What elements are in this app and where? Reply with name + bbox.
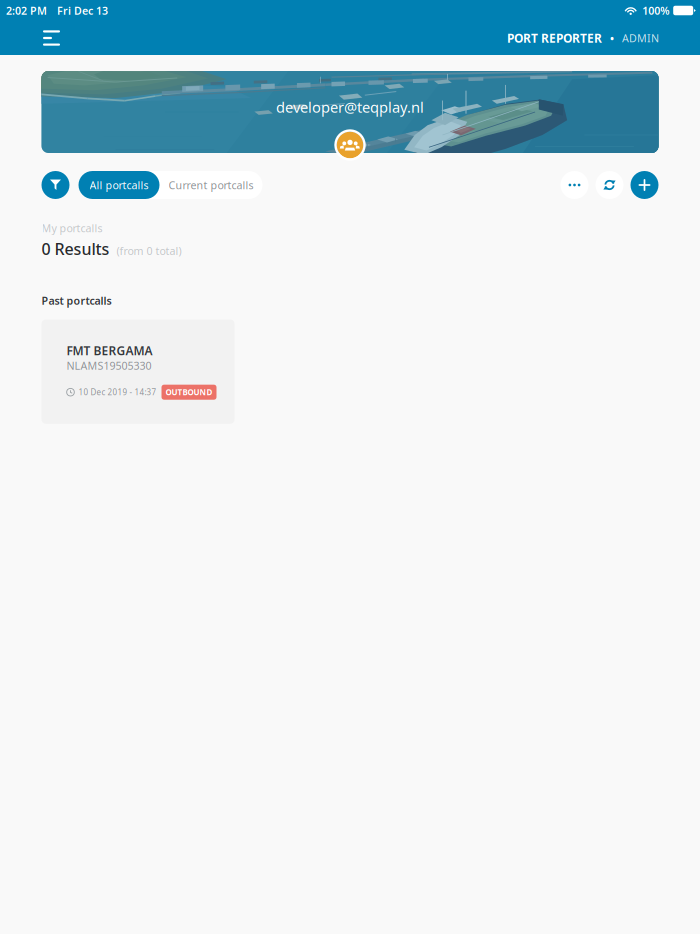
- button[interactable]: More options: [560, 171, 588, 199]
- staticText: •: [610, 31, 614, 45]
- button[interactable]: All portcalls: [78, 171, 159, 199]
- staticText: FMT BERGAMA: [66, 343, 152, 358]
- staticText: All portcalls: [89, 178, 148, 192]
- staticText: OUTBOUND: [165, 387, 212, 397]
- staticText: 10 Dec 2019 - 14:37: [78, 387, 156, 397]
- button[interactable]: FMT BERGAMA: [41, 320, 234, 424]
- button[interactable]: Current portcalls: [159, 171, 262, 199]
- staticText: PORT REPORTER: [507, 30, 602, 46]
- staticText: Current portcalls: [168, 178, 253, 192]
- staticText: 2:02 PM: [6, 3, 47, 18]
- staticText: Fri Dec 13: [57, 3, 108, 18]
- staticText: developer@teqplay.nl: [276, 97, 424, 117]
- staticText: 100%: [642, 3, 669, 18]
- staticText: My portcalls: [41, 221, 102, 235]
- staticText: Past portcalls: [41, 293, 111, 308]
- staticText: (from 0 total): [116, 244, 181, 258]
- button[interactable]: PORT REPORTER: [507, 24, 659, 52]
- button[interactable]: Filter: [41, 171, 69, 199]
- staticText: 0 Results: [41, 238, 109, 259]
- staticText: NLAMS19505330: [66, 358, 151, 373]
- button[interactable]: Refresh: [588, 171, 623, 199]
- button[interactable]: Menu: [43, 21, 79, 55]
- button[interactable]: Add portcall: [623, 171, 658, 199]
- staticText: ADMIN: [622, 31, 659, 45]
